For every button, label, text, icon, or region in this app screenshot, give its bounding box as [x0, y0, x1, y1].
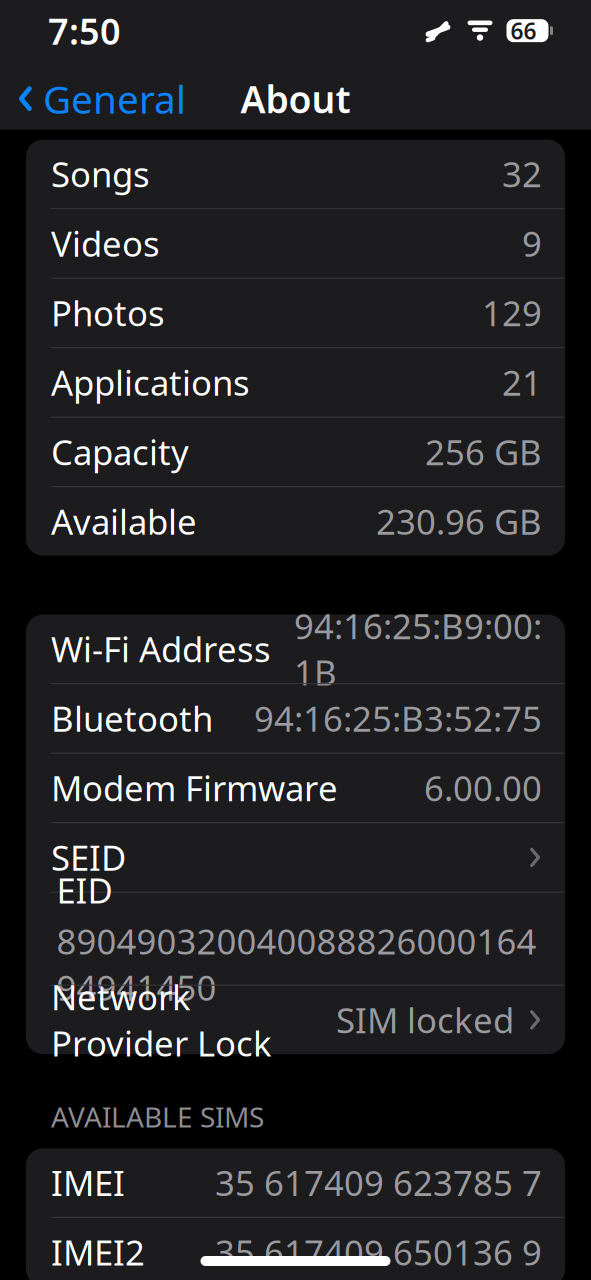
staticText: 6.00.00 [424, 765, 542, 811]
staticText: 35 617409 623785 7 [215, 1160, 542, 1206]
staticText: 7:50 [48, 7, 121, 55]
staticText: Photos [51, 290, 165, 336]
staticText: 21 [502, 359, 542, 405]
staticText: SEID [51, 834, 126, 880]
staticText: 94:16:25:B3:52:75 [254, 695, 542, 741]
staticText: 35 617409 650136 9 [215, 1229, 542, 1275]
staticText: Available [51, 498, 197, 544]
staticText: 94:16:25:B9:00:1B [294, 603, 542, 695]
staticText: General [43, 73, 186, 124]
staticText: Capacity [51, 429, 189, 475]
button[interactable]: General [0, 65, 186, 132]
staticText: Bluetooth [51, 695, 213, 741]
button[interactable]: SEID [26, 823, 565, 892]
staticText: 32 [502, 151, 542, 197]
staticText: 9 [522, 220, 542, 266]
staticText: SIM locked [336, 997, 514, 1043]
staticText: 129 [482, 290, 542, 336]
staticText: 256 GB [425, 429, 542, 475]
staticText: Network Provider Lock [51, 974, 272, 1066]
staticText: 66 [510, 16, 536, 46]
staticText: Wi-Fi Address [51, 626, 271, 672]
staticText: Songs [51, 151, 150, 197]
button[interactable]: Network Provider Lock [26, 986, 565, 1054]
staticText: Applications [51, 359, 250, 405]
staticText: EID [56, 867, 112, 913]
staticText: IMEI [51, 1160, 125, 1206]
staticText: 89049032004008882600016494941450 [56, 918, 536, 1010]
staticText: 230.96 GB [376, 498, 542, 544]
staticText: AVAILABLE SIMS [51, 1098, 264, 1135]
staticText: IMEI2 [51, 1229, 145, 1275]
staticText: Videos [51, 220, 160, 266]
staticText: About [240, 74, 350, 123]
staticText: Modem Firmware [51, 765, 338, 811]
